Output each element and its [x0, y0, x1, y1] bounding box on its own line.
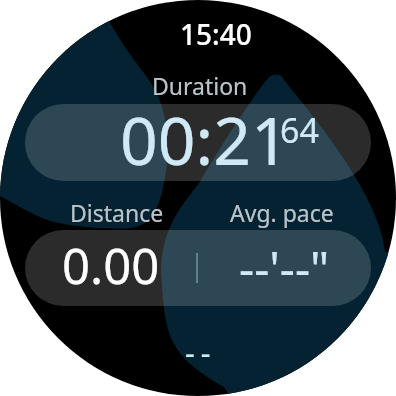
button[interactable]: 00:21	[25, 104, 371, 181]
staticText: 15:40	[180, 15, 252, 53]
staticText: 00:21	[120, 104, 289, 171]
staticText: 64	[280, 107, 319, 153]
staticText: --'--"	[239, 236, 330, 300]
staticText: Duration	[152, 70, 248, 101]
staticText: --	[185, 332, 217, 373]
button[interactable]: --'--"	[198, 230, 371, 306]
staticText: Avg. pace	[230, 197, 334, 228]
staticText: 0.00	[62, 232, 160, 299]
staticText: Distance	[70, 197, 164, 228]
button[interactable]: 0.00	[25, 230, 196, 306]
